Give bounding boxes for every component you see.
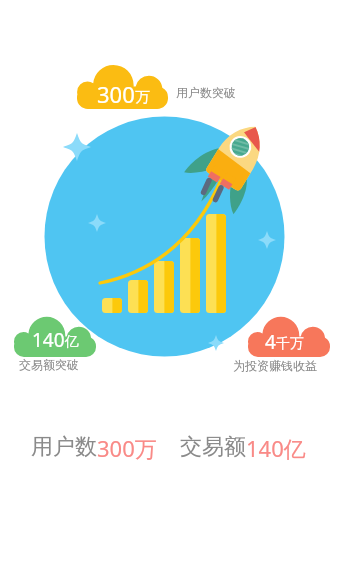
staticText: 4 (265, 329, 276, 355)
staticText: 千万 (276, 335, 304, 353)
staticText: 140亿 (246, 433, 306, 463)
staticText: 亿 (65, 333, 79, 351)
staticText: 交易额 (180, 433, 246, 461)
staticText: 140 (32, 327, 65, 353)
staticText: 300万 (97, 433, 157, 463)
staticText: 300 (97, 79, 135, 109)
staticText: 交易额突破 (19, 357, 79, 372)
staticText: 万 (135, 88, 150, 107)
staticText: 为投资赚钱收益 (233, 358, 317, 373)
staticText: 用户数 (31, 433, 97, 461)
staticText: 用户数突破 (176, 85, 236, 100)
